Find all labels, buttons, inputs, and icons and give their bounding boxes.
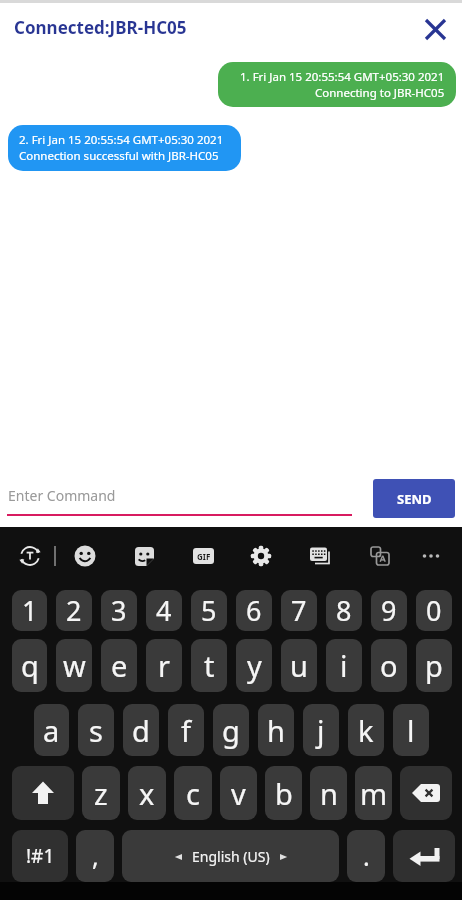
staticText: 8	[336, 592, 352, 629]
staticText: 4	[156, 592, 172, 629]
staticText: Connection successful with JBR-HC05	[19, 148, 219, 164]
staticText: 7	[291, 592, 307, 629]
staticText: 0	[426, 592, 442, 629]
button[interactable]: .	[347, 830, 385, 882]
staticText: GIF	[197, 551, 211, 562]
staticText: k	[358, 711, 374, 750]
button[interactable]: c	[174, 766, 212, 820]
staticText: f	[181, 711, 191, 750]
staticText: 3	[111, 592, 127, 629]
staticText: y	[247, 646, 262, 685]
button[interactable]: y	[236, 639, 272, 692]
button[interactable]: e	[101, 639, 137, 692]
staticText: g	[222, 711, 240, 750]
button[interactable]: ,	[76, 830, 114, 882]
button[interactable]	[419, 13, 451, 45]
staticText: c	[186, 774, 200, 813]
button[interactable]: q	[12, 639, 47, 692]
button[interactable]: f	[168, 704, 204, 756]
staticText: 1. Fri Jan 15 20:55:54 GMT+05:30 2021	[240, 69, 445, 85]
staticText: r	[158, 646, 170, 685]
button[interactable]: w	[56, 639, 92, 692]
staticText: ,	[92, 839, 99, 873]
button[interactable]: i	[326, 639, 362, 692]
button[interactable]	[69, 540, 101, 572]
button[interactable]: k	[348, 704, 384, 756]
staticText: 2. Fri Jan 15 20:55:54 GMT+05:30 2021	[19, 132, 224, 148]
button[interactable]: l	[393, 704, 429, 756]
staticText: x	[139, 774, 155, 813]
button[interactable]: 3	[101, 590, 137, 631]
staticText: 2	[66, 592, 82, 629]
staticText: p	[425, 646, 443, 685]
button[interactable]: 0	[416, 590, 452, 631]
staticText: u	[290, 646, 308, 685]
staticText: Connected:JBR-HC05	[14, 16, 187, 39]
button[interactable]	[400, 766, 452, 820]
button[interactable]: 7	[281, 590, 317, 631]
button[interactable]: m	[355, 766, 392, 820]
staticText: d	[132, 711, 150, 750]
staticText: a	[43, 711, 60, 750]
button[interactable]: s	[78, 704, 114, 756]
staticText: !#1	[26, 843, 55, 869]
staticText: l	[407, 711, 415, 750]
staticText: v	[231, 774, 246, 813]
button[interactable]: a	[34, 704, 69, 756]
staticText: z	[94, 774, 108, 813]
staticText: 1	[22, 592, 38, 629]
staticText: 6	[246, 592, 262, 629]
button[interactable]	[415, 540, 447, 572]
button[interactable]: 9	[371, 590, 407, 631]
button[interactable]: 6	[236, 590, 272, 631]
button[interactable]	[393, 830, 455, 882]
staticText: m	[360, 774, 388, 813]
staticText: i	[340, 646, 348, 685]
staticText: n	[320, 774, 338, 813]
button[interactable]: d	[123, 704, 159, 756]
staticText: q	[21, 646, 39, 685]
button[interactable]	[245, 540, 277, 572]
button[interactable]: 4	[146, 590, 182, 631]
button[interactable]: r	[146, 639, 182, 692]
staticText: o	[380, 646, 398, 685]
button[interactable]: Enter Command	[0, 478, 362, 516]
button[interactable]: 1	[12, 590, 47, 631]
button[interactable]: h	[258, 704, 294, 756]
button[interactable]	[12, 766, 74, 820]
staticText: Enter Command	[8, 486, 116, 505]
staticText: English (US)	[192, 847, 270, 866]
button[interactable]: x	[128, 766, 166, 820]
staticText: h	[267, 711, 285, 750]
button[interactable]: u	[281, 639, 317, 692]
staticText: SEND	[397, 490, 432, 508]
button[interactable]: 2	[56, 590, 92, 631]
button[interactable]: z	[82, 766, 120, 820]
button[interactable]: p	[416, 639, 452, 692]
button[interactable]: g	[213, 704, 249, 756]
staticText: w	[63, 646, 86, 685]
staticText: b	[275, 774, 293, 813]
button[interactable]: o	[371, 639, 407, 692]
staticText: Connecting to JBR-HC05	[315, 85, 445, 101]
button[interactable]: SEND	[373, 479, 455, 518]
button[interactable]: v	[220, 766, 257, 820]
button[interactable]: GIF	[187, 540, 219, 572]
staticText: s	[89, 711, 103, 750]
staticText: 5	[201, 592, 217, 629]
button[interactable]: !#1	[12, 830, 68, 882]
button[interactable]: b	[265, 766, 302, 820]
button[interactable]	[304, 540, 336, 572]
button[interactable]	[128, 540, 160, 572]
button[interactable]	[14, 540, 46, 572]
button[interactable]: English (US)	[122, 830, 339, 882]
button[interactable]	[364, 540, 396, 572]
button[interactable]: 5	[191, 590, 227, 631]
staticText: e	[111, 646, 128, 685]
button[interactable]: t	[191, 639, 227, 692]
button[interactable]: n	[310, 766, 347, 820]
staticText: t	[204, 646, 215, 685]
button[interactable]: 8	[326, 590, 362, 631]
button[interactable]: j	[303, 704, 339, 756]
staticText: 9	[381, 592, 397, 629]
